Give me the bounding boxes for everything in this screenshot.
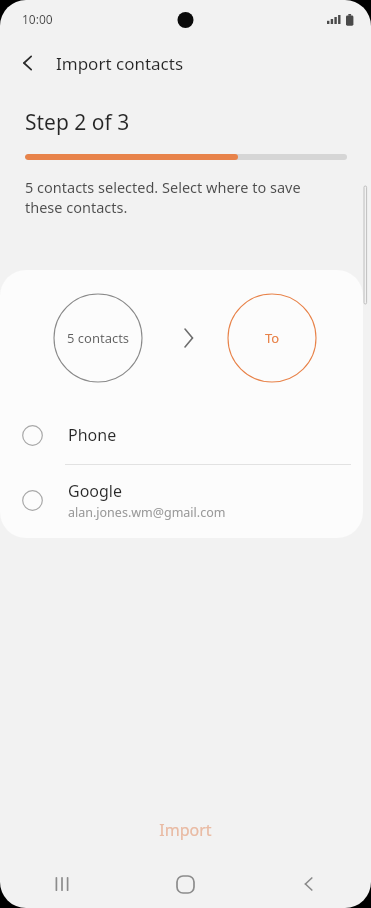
staticText: Step 2 of 3 bbox=[25, 108, 130, 137]
button[interactable]: Back bbox=[0, 44, 56, 82]
staticText: alan.jones.wm@gmail.com bbox=[68, 504, 226, 521]
button[interactable]: Home bbox=[123, 860, 247, 908]
button[interactable]: 5 contacts bbox=[54, 294, 142, 382]
button[interactable]: To bbox=[228, 294, 316, 382]
staticText: Google bbox=[68, 480, 123, 502]
button[interactable]: Google bbox=[0, 465, 363, 535]
staticText: 5 contacts selected. Select where to sav… bbox=[25, 177, 331, 218]
button[interactable]: Back bbox=[247, 860, 371, 908]
button[interactable]: Phone bbox=[0, 406, 363, 464]
button[interactable]: Recents bbox=[0, 860, 123, 908]
staticText: Import bbox=[159, 819, 212, 841]
button[interactable]: Import bbox=[0, 808, 371, 852]
staticText: 10:00 bbox=[22, 11, 53, 27]
staticText: Import contacts bbox=[56, 52, 184, 75]
staticText: To bbox=[265, 329, 280, 347]
staticText: Phone bbox=[68, 424, 117, 446]
staticText: 5 contacts bbox=[67, 329, 130, 347]
